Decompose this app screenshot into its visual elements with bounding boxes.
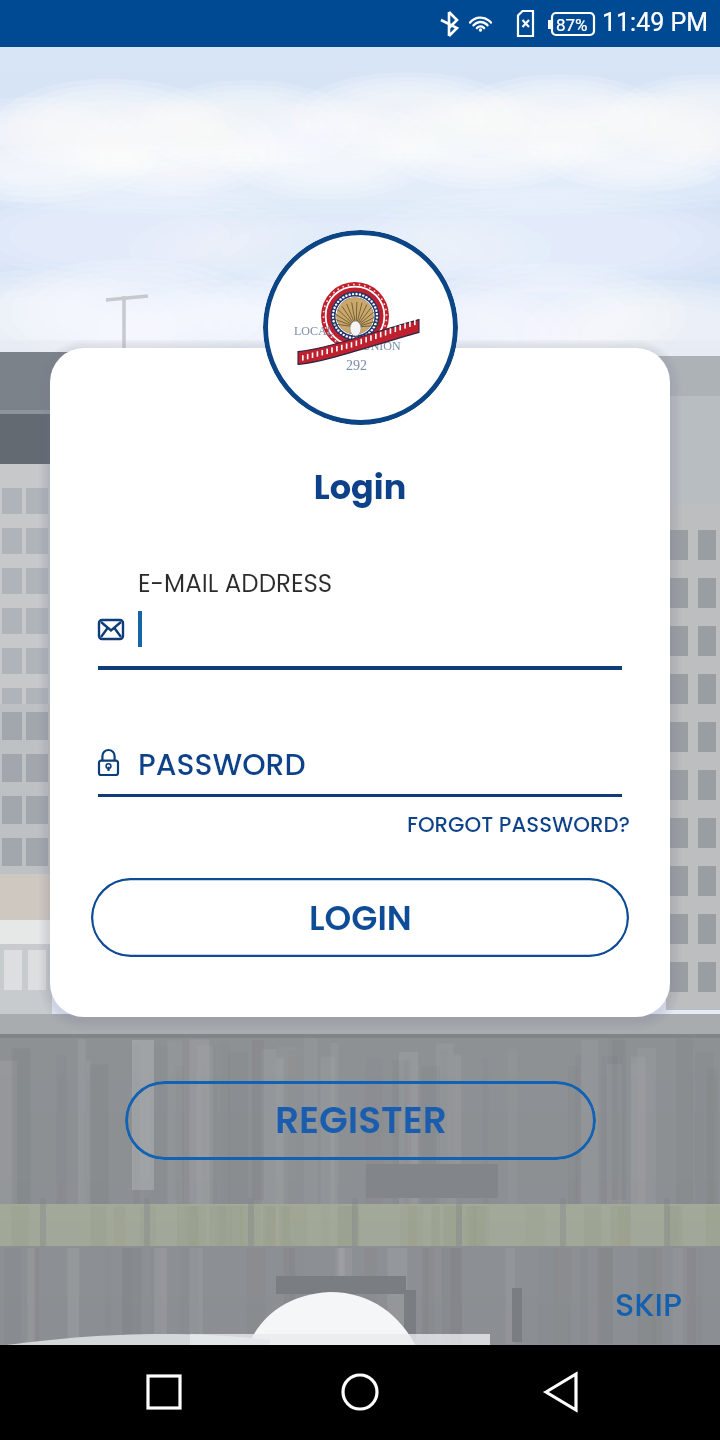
button[interactable] — [98, 600, 622, 672]
staticText: FORGOT PASSWORD? — [382, 810, 630, 840]
staticText: UNION — [362, 339, 401, 352]
staticText: 87% — [556, 15, 588, 35]
button[interactable]: SKIP — [599, 1272, 699, 1337]
button[interactable]: LOGIN — [91, 878, 629, 957]
staticText: REGISTER — [275, 1094, 447, 1147]
staticText: E-MAIL ADDRESS — [138, 566, 333, 600]
other: IBEW Local Union 292 logo — [263, 230, 458, 425]
staticText: Login — [50, 464, 670, 511]
button[interactable]: REGISTER — [125, 1081, 596, 1160]
staticText: SKIP — [615, 1282, 683, 1327]
staticText: PASSWORD — [138, 744, 306, 786]
button[interactable]: FORGOT PASSWORD? — [382, 810, 630, 840]
staticText: 11:49 PM — [602, 8, 709, 37]
staticText: LOCAL — [294, 324, 334, 337]
staticText: 292 — [346, 358, 367, 374]
button[interactable]: PASSWORD — [98, 740, 622, 798]
staticText: LOGIN — [309, 894, 412, 942]
